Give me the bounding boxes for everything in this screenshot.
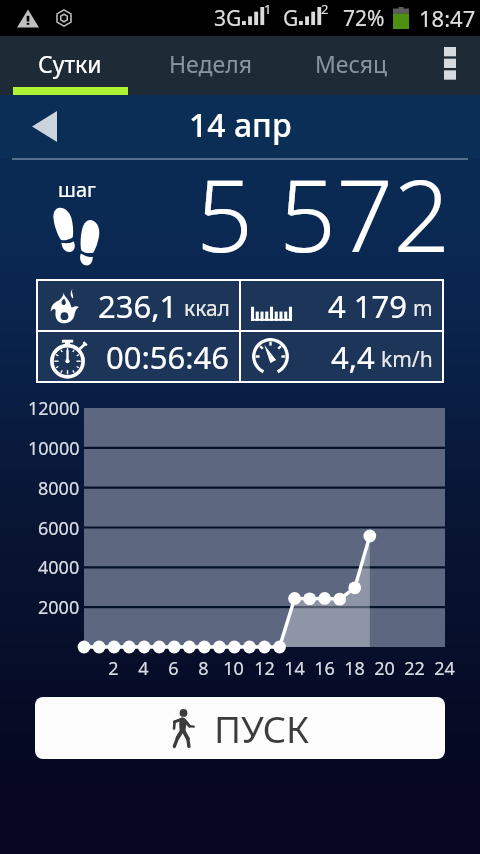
staticText: 4000 <box>38 555 80 580</box>
staticText: 2 <box>108 656 119 681</box>
button[interactable]: Неделя <box>140 36 280 96</box>
staticText: 3G <box>214 4 242 33</box>
staticText: m <box>413 294 433 323</box>
staticText: 8000 <box>38 476 80 501</box>
button[interactable]: 00:56:46 <box>38 332 239 381</box>
staticText: ПУСК <box>214 703 310 753</box>
staticText: 14 апр <box>189 103 292 147</box>
staticText: 14 <box>284 656 305 681</box>
button[interactable]: 4 179 <box>241 281 442 330</box>
staticText: 22 <box>404 656 425 681</box>
staticText: 1 <box>264 0 272 18</box>
staticText: 4,4 <box>331 336 375 378</box>
staticText: km/h <box>381 345 433 374</box>
staticText: 24 <box>434 656 455 681</box>
staticText: Сутки <box>38 48 102 79</box>
button[interactable]: Месяц <box>281 36 421 96</box>
staticText: 12 <box>254 656 275 681</box>
staticText: 8 <box>198 656 209 681</box>
button[interactable]: More options <box>421 36 480 96</box>
staticText: 72% <box>343 4 385 33</box>
staticText: 4 179 <box>328 285 407 327</box>
staticText: 12000 <box>28 396 80 421</box>
staticText: 18:47 <box>419 3 476 33</box>
staticText: 236,1 <box>98 285 178 327</box>
staticText: 10000 <box>28 436 80 461</box>
staticText: 18 <box>344 656 365 681</box>
staticText: 2 <box>321 0 329 18</box>
staticText: 4 <box>138 656 149 681</box>
staticText: G <box>283 4 299 33</box>
staticText: 6000 <box>38 516 80 541</box>
staticText: 5 572 <box>196 145 451 269</box>
staticText: 00:56:46 <box>106 336 230 378</box>
button[interactable]: 4,4 <box>241 332 442 381</box>
button[interactable]: Сутки <box>0 36 140 96</box>
staticText: Неделя <box>169 48 252 79</box>
staticText: Месяц <box>315 48 387 79</box>
staticText: 16 <box>314 656 335 681</box>
staticText: 20 <box>374 656 395 681</box>
staticText: ккал <box>184 294 230 323</box>
button[interactable]: 236,1 <box>38 281 239 330</box>
staticText: 10 <box>223 656 244 681</box>
staticText: 6 <box>168 656 179 681</box>
staticText: 2000 <box>38 595 80 620</box>
button[interactable]: Previous day <box>22 104 66 148</box>
staticText: шаг <box>58 176 96 203</box>
button[interactable]: ПУСК <box>35 697 445 759</box>
